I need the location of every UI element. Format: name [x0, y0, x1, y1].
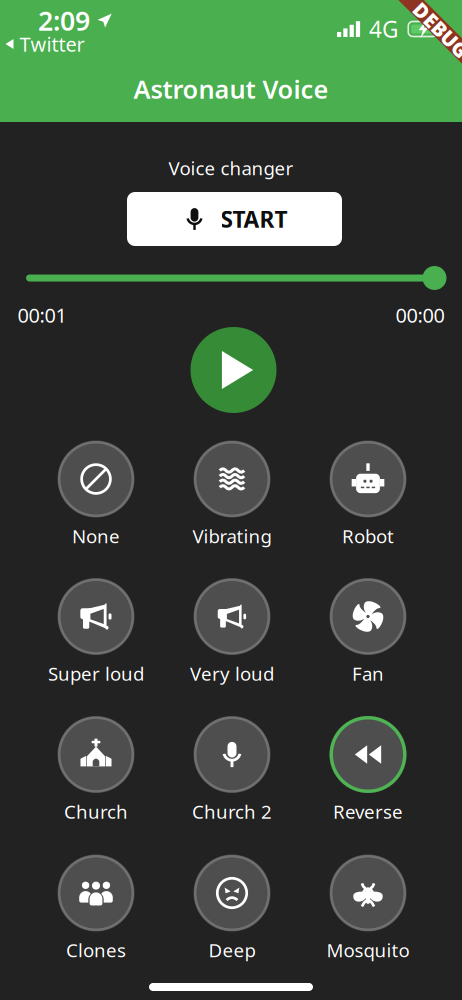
staticText: Robot	[342, 524, 394, 548]
staticText: Deep	[208, 938, 255, 962]
staticText: 2:09	[38, 3, 90, 38]
button[interactable]: Mosquito	[303, 855, 433, 959]
staticText: 4G	[369, 14, 399, 44]
button[interactable]: START	[127, 192, 342, 246]
staticText: None	[72, 524, 120, 548]
staticText: 00:01	[17, 302, 66, 328]
button[interactable]: Fan	[303, 578, 433, 682]
button[interactable]: None	[31, 441, 161, 545]
staticText: Very loud	[190, 661, 274, 686]
staticText: 00:00	[395, 302, 444, 328]
staticText: Voice changer	[168, 156, 293, 180]
button[interactable]: Vibrating	[167, 441, 297, 545]
staticText: Church	[64, 799, 128, 824]
button[interactable]: Play	[190, 327, 276, 413]
staticText: Twitter	[19, 31, 84, 57]
staticText: Church 2	[192, 799, 272, 824]
staticText: DEBUG	[406, 17, 462, 43]
button[interactable]: Super loud	[31, 578, 161, 682]
button[interactable]: Clones	[31, 855, 161, 959]
button[interactable]: Reverse	[303, 716, 433, 820]
button[interactable]: Robot	[303, 441, 433, 545]
staticText: START	[220, 204, 287, 234]
staticText: Clones	[66, 938, 126, 962]
staticText: Mosquito	[326, 938, 409, 962]
staticText: Reverse	[333, 799, 403, 824]
staticText: Vibrating	[192, 524, 271, 548]
button[interactable]: Very loud	[167, 578, 297, 682]
button[interactable]: Church	[31, 716, 161, 820]
staticText: Astronaut Voice	[133, 72, 328, 106]
staticText: Fan	[352, 661, 384, 686]
staticText: Super loud	[48, 661, 144, 686]
button[interactable]: Church 2	[167, 716, 297, 820]
button[interactable]: Deep	[167, 855, 297, 959]
